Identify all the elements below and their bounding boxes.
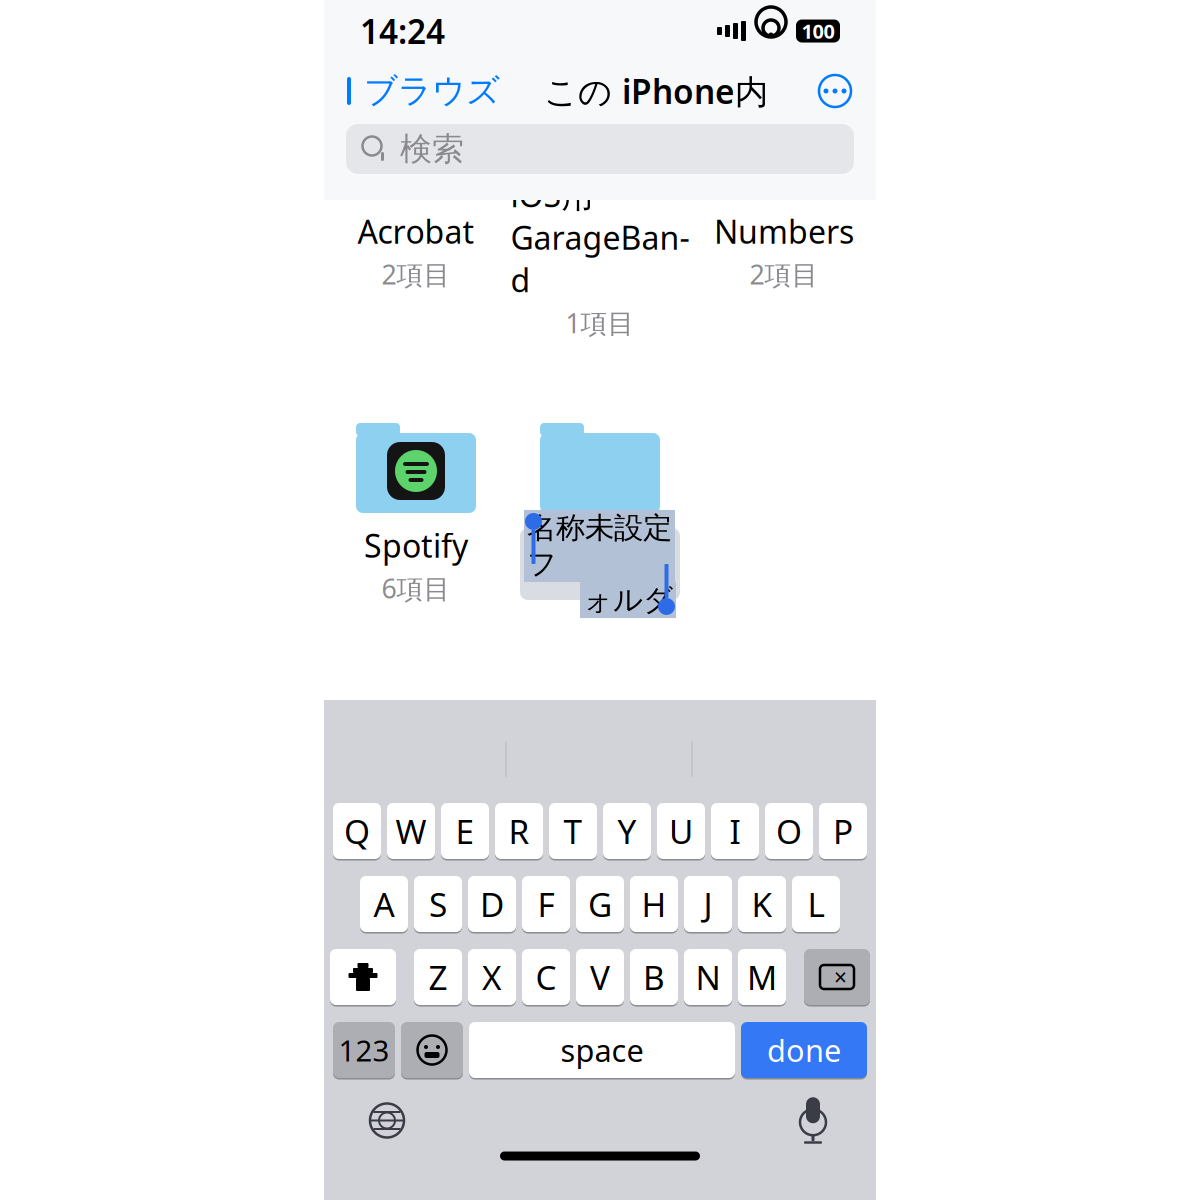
button[interactable]: 検索 (346, 124, 854, 174)
staticText: A (373, 882, 394, 926)
button[interactable]: キーボードを切り替え (358, 1091, 416, 1149)
button[interactable]: 絵文字 (401, 1020, 463, 1079)
staticText: × (834, 962, 847, 992)
staticText: O (776, 809, 802, 853)
button[interactable]: R (495, 801, 543, 860)
button[interactable]: U (657, 801, 705, 860)
button[interactable]: E (441, 801, 489, 860)
staticText: ォルダ (583, 582, 673, 618)
button[interactable]: Q (333, 801, 381, 860)
staticText: Q (344, 809, 370, 853)
staticText: E (455, 809, 474, 853)
button[interactable]: Numbers (692, 108, 876, 304)
button[interactable]: X (468, 947, 516, 1006)
button[interactable]: O (765, 801, 813, 860)
button[interactable]: P (819, 801, 867, 860)
staticText: J (703, 882, 712, 926)
button[interactable]: Delete (804, 947, 870, 1006)
button[interactable]: S (414, 874, 462, 933)
button[interactable]: 123 (333, 1020, 395, 1079)
staticText: 1項目 (565, 305, 634, 340)
staticText: R (508, 809, 529, 853)
staticText: D (480, 882, 504, 926)
staticText: Acrobat (357, 210, 474, 252)
staticText: Spotify (364, 524, 468, 566)
staticText: iOS用 GarageBand (510, 173, 689, 301)
staticText: 123 (338, 1030, 389, 1069)
staticText: この iPhone内 (544, 69, 768, 113)
button[interactable]: 音声入力 (784, 1091, 842, 1149)
staticText: B (643, 955, 665, 999)
staticText: W (395, 809, 426, 853)
staticText: C (535, 955, 556, 999)
staticText: S (429, 882, 447, 926)
staticText: L (807, 882, 824, 926)
button[interactable]: W (387, 801, 435, 860)
button[interactable]: C (522, 947, 570, 1006)
staticText: ブラウズ (364, 70, 500, 111)
button[interactable]: A (324, 108, 508, 304)
staticText: 100 (801, 18, 834, 44)
staticText: X (482, 955, 502, 999)
staticText: T (563, 809, 582, 853)
staticText: N (695, 955, 720, 999)
staticText: done (767, 1030, 841, 1070)
staticText: U (669, 809, 693, 853)
staticText: Numbers (714, 210, 854, 252)
staticText: A (402, 130, 430, 183)
staticText: G (588, 882, 612, 926)
button[interactable]: H (630, 874, 678, 933)
button[interactable]: Z (414, 947, 462, 1006)
staticText: space (560, 1030, 643, 1070)
button[interactable]: Shift (330, 947, 396, 1006)
button[interactable]: Y (603, 801, 651, 860)
staticText: Y (617, 809, 636, 853)
staticText: H (641, 882, 666, 926)
staticText: 14:24 (360, 9, 445, 53)
button[interactable]: T (549, 801, 597, 860)
button[interactable]: I (711, 801, 759, 860)
button[interactable]: V (576, 947, 624, 1006)
staticText: 検索 (400, 129, 464, 169)
staticText: P (833, 809, 853, 853)
staticText: M (747, 955, 777, 999)
button[interactable]: M (738, 947, 786, 1006)
staticText: I (729, 809, 740, 853)
staticText: 6項目 (381, 570, 450, 606)
button[interactable]: ブラウズ (342, 62, 500, 119)
staticText: Z (428, 955, 447, 999)
button[interactable]: J (684, 874, 732, 933)
button[interactable]: done (741, 1020, 867, 1079)
button[interactable]: Spotify (324, 422, 508, 618)
button[interactable]: G (576, 874, 624, 933)
staticText: 名称未設定フ (527, 510, 672, 582)
staticText: F (537, 882, 554, 926)
staticText: 2項目 (749, 256, 818, 292)
button[interactable]: space (469, 1020, 735, 1079)
button[interactable]: N (684, 947, 732, 1006)
staticText: V (590, 955, 610, 999)
button[interactable]: K (738, 874, 786, 933)
staticText: K (751, 882, 772, 926)
button[interactable]: D (468, 874, 516, 933)
button[interactable]: A (360, 874, 408, 933)
button[interactable]: その他 (812, 68, 858, 114)
staticText: 2項目 (381, 256, 450, 292)
button[interactable]: L (792, 874, 840, 933)
button[interactable]: iOS用 GarageBand (508, 108, 692, 304)
button[interactable]: B (630, 947, 678, 1006)
button[interactable]: F (522, 874, 570, 933)
